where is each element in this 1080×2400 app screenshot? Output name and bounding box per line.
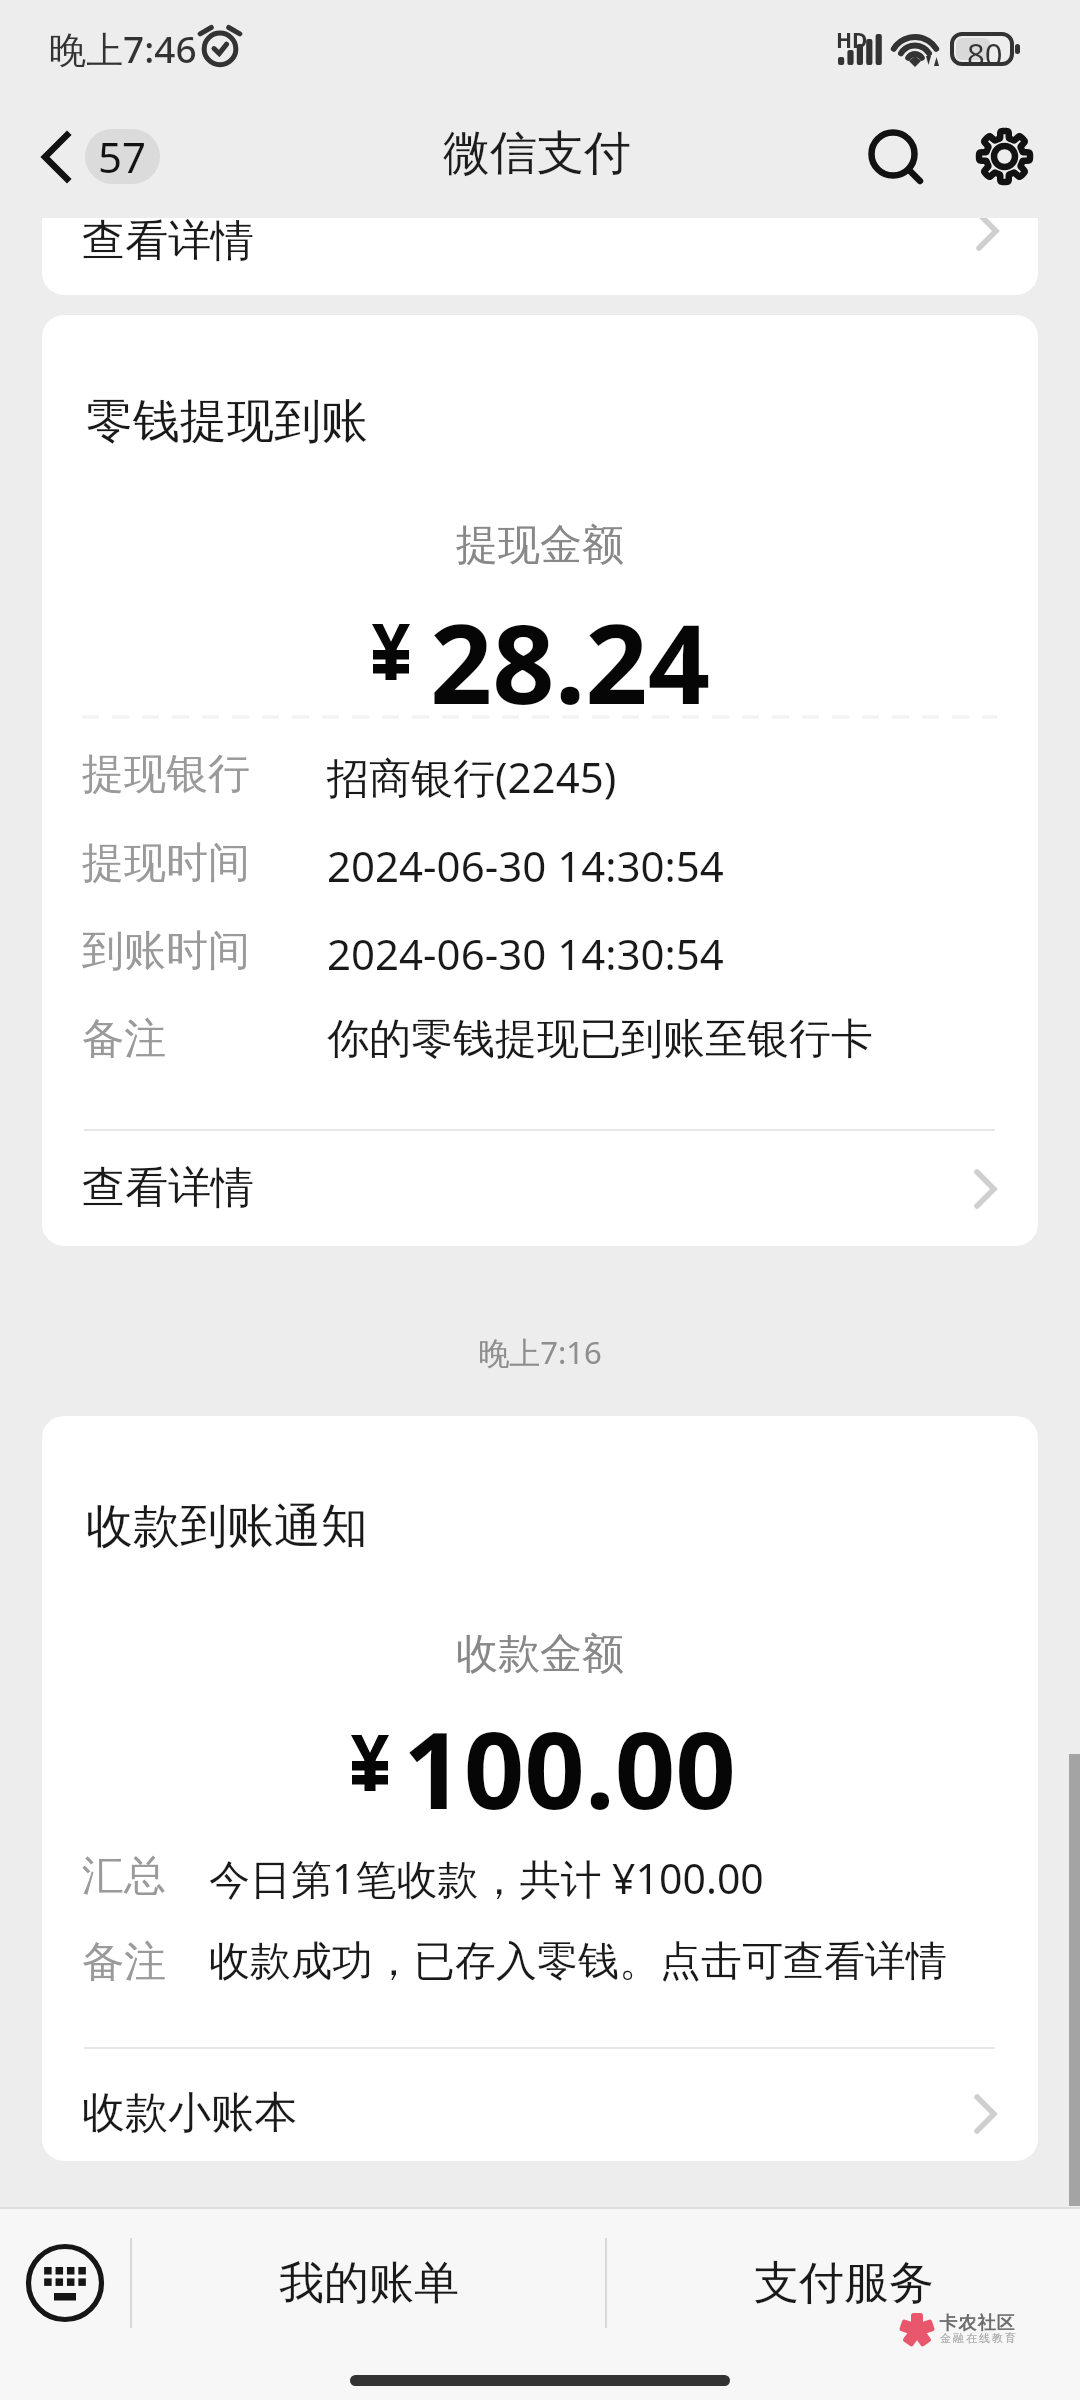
staticText: 提现银行: [82, 748, 250, 801]
staticText: 查看详情: [82, 1161, 254, 1215]
staticText: 汇总: [82, 1850, 166, 1903]
staticText: 你的零钱提现已到账至银行卡: [327, 1013, 873, 1066]
staticText: 收款到账通知: [86, 1497, 368, 1556]
staticText: 备注: [82, 1936, 166, 1989]
button[interactable]: 我的账单: [132, 2209, 605, 2357]
staticText: 2024-06-30 14:30:54: [327, 925, 724, 982]
staticText: 100.00: [403, 1696, 736, 1840]
button[interactable]: Settings: [954, 100, 1054, 218]
staticText: 微信支付: [443, 124, 631, 183]
staticText: 80: [967, 33, 1003, 75]
staticText: 提现时间: [82, 837, 250, 890]
button[interactable]: 查看详情: [42, 218, 1038, 295]
button[interactable]: Search: [843, 100, 943, 218]
staticText: 57: [98, 129, 147, 183]
staticText: 2024-06-30 14:30:54: [327, 837, 724, 894]
staticText: 28.24: [430, 587, 711, 735]
staticText: 提现金额: [42, 519, 1038, 572]
staticText: 晚上7:46: [49, 23, 197, 74]
staticText: 招商银行(2245): [327, 748, 617, 805]
staticText: 支付服务: [754, 2255, 934, 2312]
staticText: 到账时间: [82, 925, 250, 978]
staticText: 查看详情: [82, 218, 254, 268]
button[interactable]: 收款小账本: [42, 2058, 1038, 2161]
button[interactable]: 57: [36, 129, 172, 184]
staticText: 收款成功，已存入零钱。点击可查看详情: [209, 1936, 947, 1988]
staticText: 晚上7:16: [0, 1331, 1080, 1373]
staticText: 金融在线教育: [939, 2331, 1017, 2345]
staticText: 备注: [82, 1013, 166, 1066]
staticText: 收款小账本: [82, 2086, 297, 2140]
staticText: 卡农社区: [939, 2312, 1016, 2335]
staticText: HD: [836, 26, 868, 55]
button[interactable]: 查看详情: [42, 1131, 1038, 1246]
staticText: 零钱提现到账: [86, 392, 368, 451]
staticText: 收款金额: [42, 1628, 1038, 1681]
button[interactable]: Keyboard: [0, 2209, 130, 2357]
staticText: 今日第1笔收款，共计 ¥100.00: [209, 1850, 764, 1906]
staticText: 我的账单: [279, 2255, 459, 2312]
button[interactable]: 支付服务: [607, 2209, 1080, 2357]
